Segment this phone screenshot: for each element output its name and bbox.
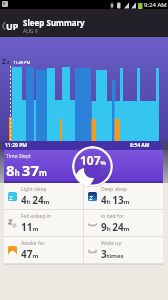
button[interactable]: Fell asleep in xyxy=(4,210,83,237)
button[interactable]: 107% xyxy=(72,146,113,187)
staticText: 47m xyxy=(21,247,39,261)
staticText: Woke up xyxy=(101,240,122,247)
staticText: 9:24 AM xyxy=(144,1,167,9)
staticText: Deep sleep xyxy=(101,186,128,193)
staticText: AUG 9 xyxy=(23,28,38,35)
staticText: 11:29 PM xyxy=(5,142,27,149)
button[interactable]: Deep sleep xyxy=(84,183,163,210)
staticText: 11:40 PM xyxy=(13,60,31,65)
button[interactable]: Woke up xyxy=(84,237,163,264)
staticText: z xyxy=(7,59,10,66)
staticText: 8:54 AM xyxy=(130,142,150,149)
staticText: Awake for xyxy=(21,240,45,247)
staticText: Time Slept xyxy=(6,153,31,160)
button[interactable]: Awake for xyxy=(4,237,83,264)
staticText: Light sleep xyxy=(21,186,47,193)
staticText: 107% xyxy=(80,152,107,168)
button[interactable]: in bed for xyxy=(84,210,163,237)
button[interactable]: Light sleep xyxy=(4,183,83,210)
staticText: 3times xyxy=(101,247,124,261)
staticText: Sleep Summary xyxy=(23,17,85,28)
staticText: Z xyxy=(2,57,7,67)
staticText: 9h 24m xyxy=(101,220,130,234)
staticText: in bed for xyxy=(101,213,124,220)
staticText: 4h 13m xyxy=(101,193,130,207)
button[interactable]: UP xyxy=(2,20,19,32)
staticText: UP xyxy=(6,20,19,32)
staticText: 11m xyxy=(21,220,39,234)
staticText: 4h 24m xyxy=(21,193,50,207)
staticText: 8h 37m xyxy=(6,160,47,180)
staticText: Fell asleep in xyxy=(21,213,52,220)
